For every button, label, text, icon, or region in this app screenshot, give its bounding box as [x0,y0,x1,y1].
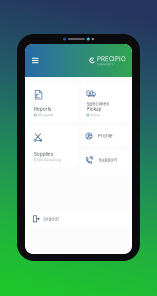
button[interactable]: Support [81,150,127,170]
button[interactable]: Logout [28,211,128,227]
staticText: PRECIPIO [97,55,126,63]
staticText: Logout [43,216,58,221]
button[interactable]: Specimen Pickup [81,83,127,122]
staticText: Reports [34,107,51,112]
staticText: Profile [98,133,112,139]
staticText: Support [99,157,117,163]
button[interactable]: Supplies [28,126,77,167]
button[interactable]: Profile [81,126,127,146]
staticText: All reports [38,113,54,117]
staticText: Active [90,113,100,117]
staticText: Specimen Pickup [86,101,109,112]
button[interactable]: Reports [28,83,77,122]
button[interactable]: Menu [32,54,42,66]
staticText: DIAGNOSTICS [97,63,113,66]
staticText: Supplies [34,152,53,157]
staticText: 5 [34,158,36,162]
staticText: Kits Remaining [37,158,61,162]
